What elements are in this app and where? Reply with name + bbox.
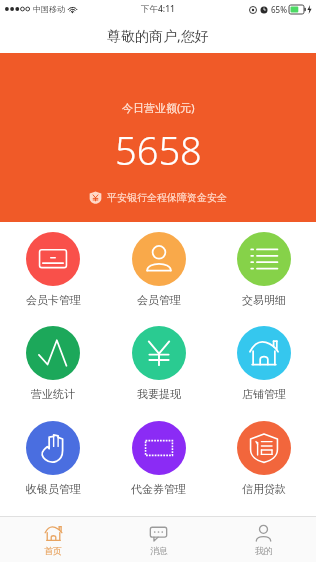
button[interactable]: 消息: [106, 517, 211, 562]
button[interactable]: 我的: [211, 517, 316, 562]
button[interactable]: 收银员管理: [0, 421, 106, 516]
staticText: 65%: [271, 4, 287, 15]
staticText: 中国移动: [33, 4, 65, 14]
staticText: 今日营业额(元): [122, 100, 195, 115]
staticText: 信用贷款: [242, 482, 286, 496]
staticText: 会员卡管理: [26, 293, 81, 307]
staticText: 我要提现: [137, 387, 181, 401]
button[interactable]: 会员卡管理: [0, 232, 106, 326]
button[interactable]: 营业统计: [0, 326, 106, 421]
button[interactable]: 我要提现: [106, 326, 211, 421]
button[interactable]: 交易明细: [211, 232, 316, 326]
staticText: 交易明细: [242, 293, 286, 307]
staticText: 下午4:11: [141, 3, 175, 15]
button[interactable]: 信用贷款: [211, 421, 316, 516]
staticText: 5658: [115, 124, 202, 176]
staticText: 尊敬的商户,您好: [107, 26, 209, 45]
staticText: 首页: [44, 545, 62, 556]
staticText: 平安银行全程保障资金安全: [107, 191, 227, 204]
staticText: 营业统计: [31, 387, 75, 401]
staticText: 代金券管理: [131, 482, 186, 496]
staticText: 消息: [150, 545, 168, 556]
button[interactable]: 代金券管理: [106, 421, 211, 516]
button[interactable]: 首页: [0, 517, 106, 562]
staticText: 会员管理: [137, 293, 181, 307]
button[interactable]: 店铺管理: [211, 326, 316, 421]
staticText: 我的: [255, 545, 273, 556]
staticText: 收银员管理: [26, 482, 81, 496]
staticText: 店铺管理: [242, 387, 286, 401]
button[interactable]: 会员管理: [106, 232, 211, 326]
